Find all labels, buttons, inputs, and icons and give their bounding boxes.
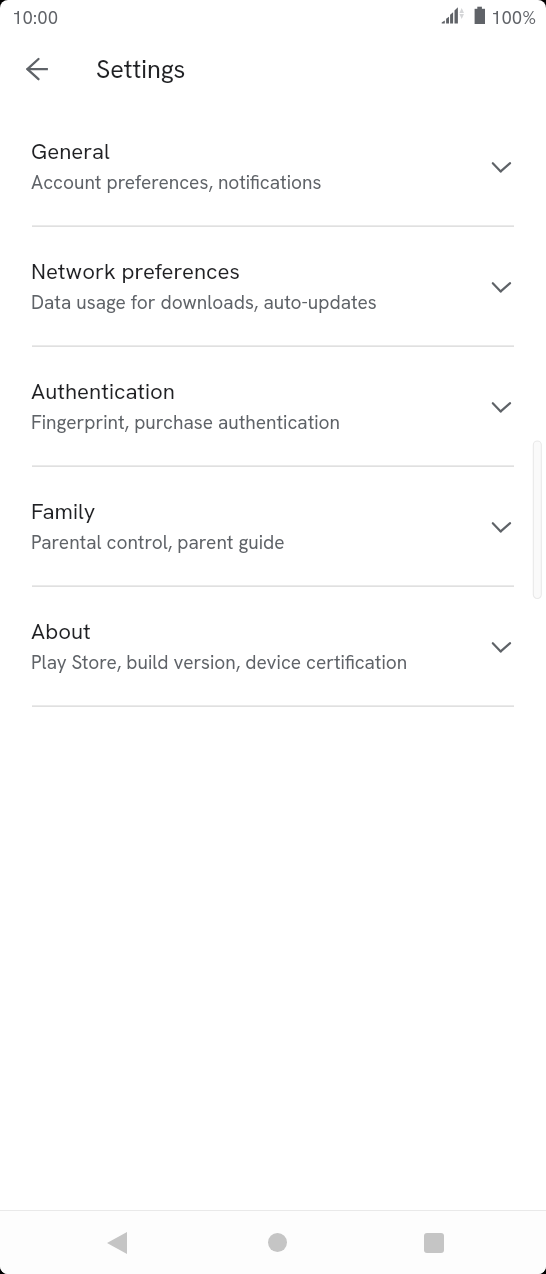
staticText: 100% xyxy=(491,5,537,29)
button[interactable]: Family xyxy=(0,465,546,585)
staticText: General xyxy=(31,137,110,166)
staticText: Parental control, parent guide xyxy=(31,530,285,555)
button[interactable]: General xyxy=(0,105,546,225)
staticText: Account preferences, notifications xyxy=(31,170,322,195)
staticText: Data usage for downloads, auto-updates xyxy=(31,290,377,315)
button[interactable]: Authentication xyxy=(0,345,546,465)
button[interactable]: Home xyxy=(237,1211,317,1274)
button[interactable]: Back xyxy=(13,45,61,93)
staticText: Network preferences xyxy=(31,257,241,286)
staticText: Settings xyxy=(96,53,186,86)
staticText: About xyxy=(31,617,91,646)
staticText: Fingerprint, purchase authentication xyxy=(31,410,341,435)
button[interactable]: Back xyxy=(77,1211,157,1274)
staticText: Authentication xyxy=(31,377,175,406)
staticText: Play Store, build version, device certif… xyxy=(31,650,408,675)
button[interactable]: Recent apps xyxy=(394,1211,474,1274)
button[interactable]: About xyxy=(0,585,546,705)
staticText: 10:00 xyxy=(12,5,59,29)
staticText: Family xyxy=(31,497,96,526)
button[interactable]: Network preferences xyxy=(0,225,546,345)
